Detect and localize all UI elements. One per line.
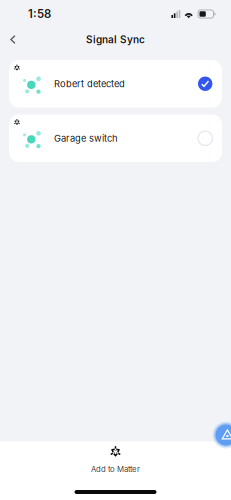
staticText: Garage switch xyxy=(54,133,118,144)
button[interactable]: Robert detected xyxy=(9,60,222,107)
staticText: Add to Matter xyxy=(91,464,140,474)
button[interactable]: Garage switch xyxy=(9,114,222,162)
staticText: 1:58 xyxy=(28,7,51,21)
staticText: Signal Sync xyxy=(86,33,145,46)
button[interactable]: Back xyxy=(0,28,28,51)
button[interactable]: Accessibility shortcut xyxy=(212,421,231,448)
button[interactable]: Add to Matter xyxy=(73,443,158,477)
staticText: Robert detected xyxy=(54,78,125,89)
